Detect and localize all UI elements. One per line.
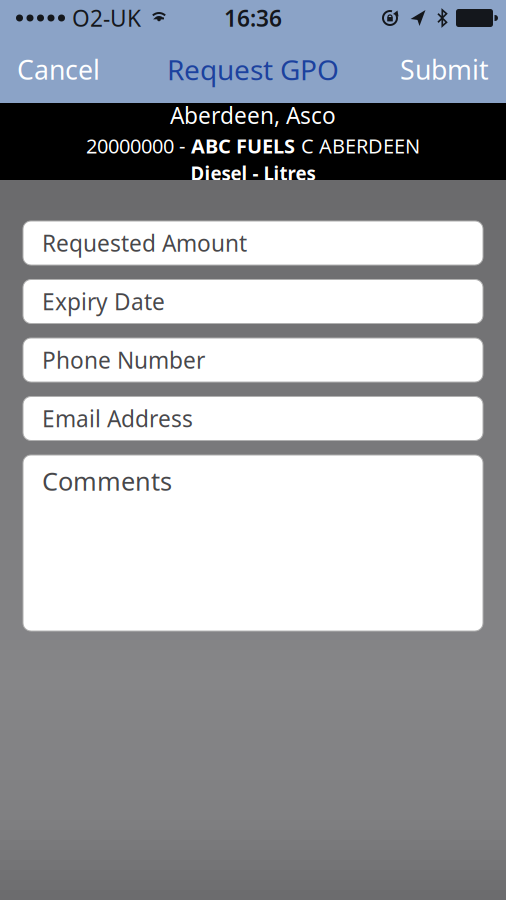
button[interactable]: Cancel — [0, 38, 100, 101]
button[interactable]: Comments — [23, 455, 483, 631]
staticText: Comments — [42, 464, 172, 498]
button[interactable]: Expiry Date — [23, 279, 483, 323]
staticText: O2-UK — [72, 3, 141, 33]
staticText: Cancel — [17, 52, 100, 87]
button[interactable]: Requested Amount — [23, 221, 483, 265]
staticText: 20000000 - — [86, 132, 185, 159]
staticText: 16:36 — [224, 3, 282, 33]
button[interactable]: Submit — [400, 38, 506, 101]
staticText: Submit — [400, 52, 489, 87]
staticText: Diesel - Litres — [190, 161, 315, 186]
staticText: Email Address — [42, 403, 193, 433]
button[interactable]: Phone Number — [23, 338, 483, 382]
staticText: Requested Amount — [42, 228, 247, 258]
button[interactable]: Email Address — [23, 396, 483, 440]
staticText: Expiry Date — [42, 286, 165, 316]
staticText: ABC FUELS — [191, 132, 295, 159]
staticText: Request GPO — [167, 51, 339, 88]
staticText: C ABERDEEN — [301, 132, 420, 159]
staticText: Aberdeen, Asco — [170, 100, 336, 130]
staticText: Phone Number — [42, 345, 205, 375]
